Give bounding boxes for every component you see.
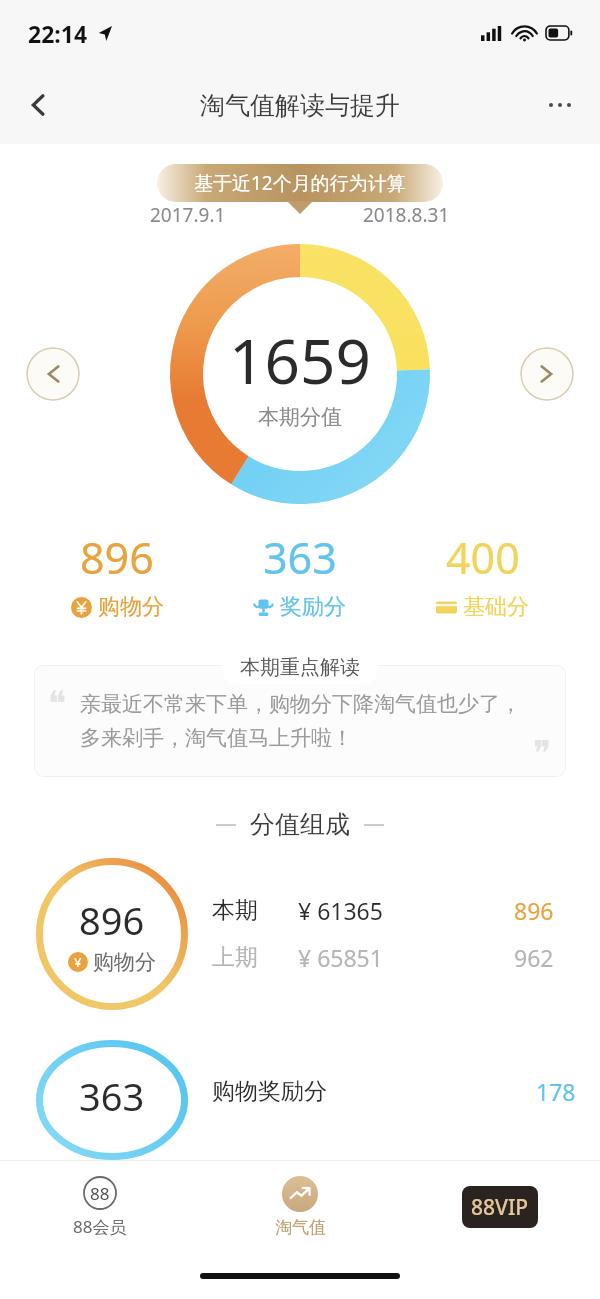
staticText: 淘气值解读与提升 — [200, 90, 400, 121]
button[interactable]: Previous period — [26, 347, 80, 401]
button[interactable]: 363 — [0, 1040, 600, 1160]
staticText: 178 — [536, 1076, 576, 1107]
staticText: 上期 — [212, 943, 298, 972]
staticText: 奖励分 — [280, 593, 346, 621]
button[interactable]: Next period — [520, 347, 574, 401]
staticText: 88VIP — [471, 1193, 529, 1222]
staticText: 2018.8.31 — [363, 202, 450, 228]
button[interactable]: 88 — [0, 1161, 200, 1253]
staticText: 88 — [90, 1182, 110, 1205]
staticText: ¥ 61365 — [298, 895, 514, 926]
staticText: 896 — [514, 895, 576, 926]
staticText: ❞ — [533, 733, 552, 773]
staticText: 本期分值 — [258, 404, 342, 430]
staticText: 购物奖励分 — [212, 1077, 536, 1106]
staticText: 363 — [79, 1070, 145, 1122]
staticText: 本期 — [212, 896, 298, 925]
staticText: 2017.9.1 — [150, 202, 226, 228]
button[interactable]: 896 — [0, 850, 600, 1018]
staticText: ❝ — [48, 683, 67, 723]
staticText: 88会员 — [73, 1215, 127, 1238]
staticText: 22:14 — [28, 18, 88, 49]
staticText: 896 — [79, 894, 145, 946]
button[interactable]: More options — [532, 77, 588, 133]
staticText: 淘气值 — [275, 1217, 326, 1238]
staticText: 基于近12个月的行为计算 — [194, 170, 406, 196]
staticText: 购物分 — [93, 949, 156, 975]
staticText: 本期重点解读 — [240, 655, 360, 680]
button[interactable]: ❝ — [34, 665, 566, 777]
staticText: 363 — [263, 528, 337, 587]
button[interactable]: 363 — [208, 528, 391, 621]
button[interactable]: 896 — [26, 528, 208, 621]
staticText: 亲最近不常来下单，购物分下降淘气值也少了，多来剁手，淘气值马上升啦！ — [80, 691, 540, 751]
staticText: 购物分 — [98, 593, 164, 621]
button[interactable]: Back — [10, 76, 68, 134]
staticText: 896 — [80, 528, 154, 587]
button[interactable]: 淘气值 — [200, 1161, 400, 1253]
staticText: ¥ 65851 — [298, 942, 514, 973]
button[interactable]: 88VIP — [462, 1186, 538, 1228]
staticText: 962 — [514, 942, 576, 973]
staticText: ¥ — [74, 953, 82, 971]
button[interactable]: 400 — [391, 528, 574, 621]
staticText: 400 — [446, 528, 520, 587]
staticText: 分值组成 — [250, 809, 350, 840]
staticText: 基础分 — [463, 593, 529, 621]
staticText: 1659 — [229, 318, 371, 402]
